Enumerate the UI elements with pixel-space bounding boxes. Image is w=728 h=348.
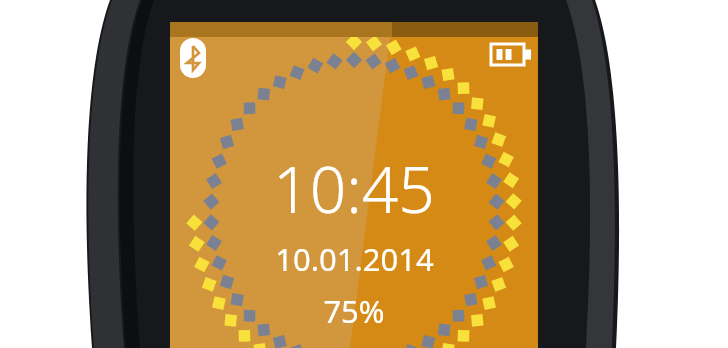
staticText: 10:45 <box>273 145 435 232</box>
button[interactable]: Smartwatch face showing 10:45 <box>0 0 728 348</box>
staticText: 75% <box>323 290 385 332</box>
staticText: 10.01.2014 <box>275 238 434 280</box>
